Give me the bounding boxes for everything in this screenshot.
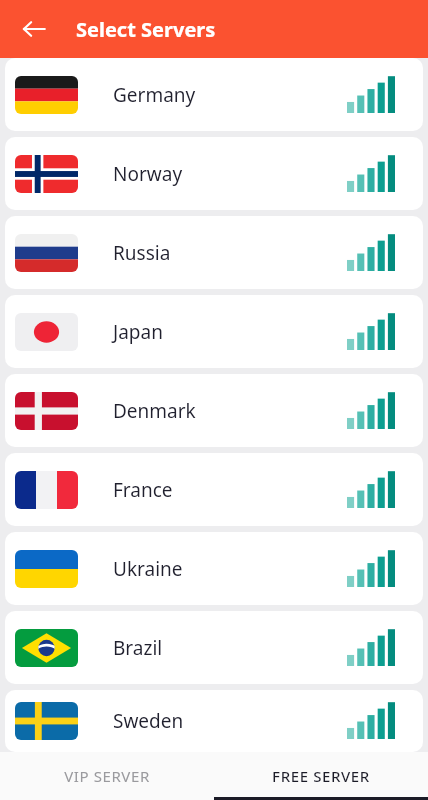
staticText: VIP SERVER xyxy=(64,766,150,786)
button[interactable]: Norway xyxy=(5,137,423,210)
button[interactable]: Denmark xyxy=(5,374,423,447)
staticText: Sweden xyxy=(113,708,347,734)
button[interactable]: France xyxy=(5,453,423,526)
button[interactable]: VIP SERVER xyxy=(0,752,214,800)
staticText: Brazil xyxy=(113,635,347,661)
staticText: Germany xyxy=(113,82,347,108)
staticText: Russia xyxy=(113,240,347,266)
staticText: France xyxy=(113,477,347,503)
button[interactable]: Ukraine xyxy=(5,532,423,605)
button[interactable]: Back xyxy=(10,5,58,53)
staticText: Japan xyxy=(113,319,347,345)
button[interactable]: Brazil xyxy=(5,611,423,684)
staticText: Denmark xyxy=(113,398,347,424)
button[interactable]: Russia xyxy=(5,216,423,289)
staticText: Ukraine xyxy=(113,556,347,582)
button[interactable]: Japan xyxy=(5,295,423,368)
staticText: Select Servers xyxy=(76,16,216,43)
staticText: FREE SERVER xyxy=(272,766,370,786)
button[interactable]: Sweden xyxy=(5,690,423,752)
button[interactable]: Germany xyxy=(5,58,423,131)
staticText: Norway xyxy=(113,161,347,187)
button[interactable]: FREE SERVER xyxy=(214,752,428,800)
